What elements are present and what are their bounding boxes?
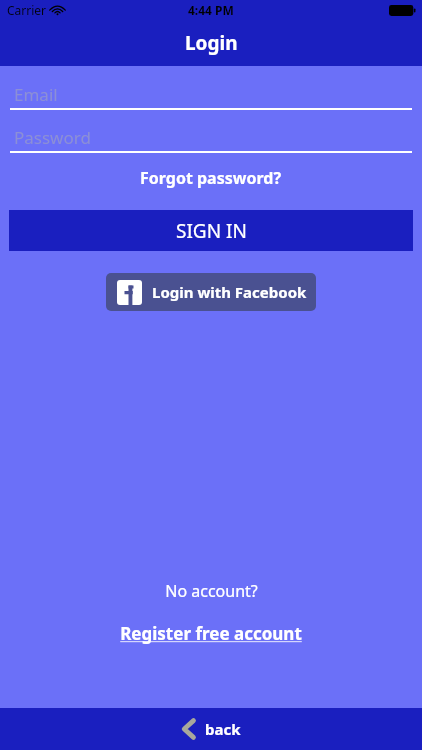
staticText: No account? bbox=[165, 580, 258, 602]
staticText: SIGN IN bbox=[176, 218, 247, 244]
button[interactable]: Email bbox=[0, 80, 422, 110]
staticText: back bbox=[205, 719, 241, 739]
staticText: Carrier bbox=[7, 2, 47, 18]
button[interactable]: Password bbox=[0, 123, 422, 153]
staticText: Register free account bbox=[120, 622, 302, 645]
staticText: Login with Facebook bbox=[152, 282, 307, 302]
button[interactable]: Register free account bbox=[0, 622, 422, 645]
staticText: Login bbox=[185, 30, 238, 56]
button[interactable]: Forgot password? bbox=[0, 167, 422, 189]
staticText: Email bbox=[14, 83, 58, 106]
button[interactable]: Back bbox=[169, 714, 253, 744]
button[interactable]: SIGN IN bbox=[9, 210, 413, 251]
staticText: Password bbox=[14, 126, 91, 149]
other: Back bbox=[181, 718, 197, 740]
button[interactable]: Login with Facebook bbox=[106, 273, 316, 311]
staticText: 4:44 PM bbox=[188, 2, 234, 18]
staticText: Forgot password? bbox=[140, 167, 282, 189]
